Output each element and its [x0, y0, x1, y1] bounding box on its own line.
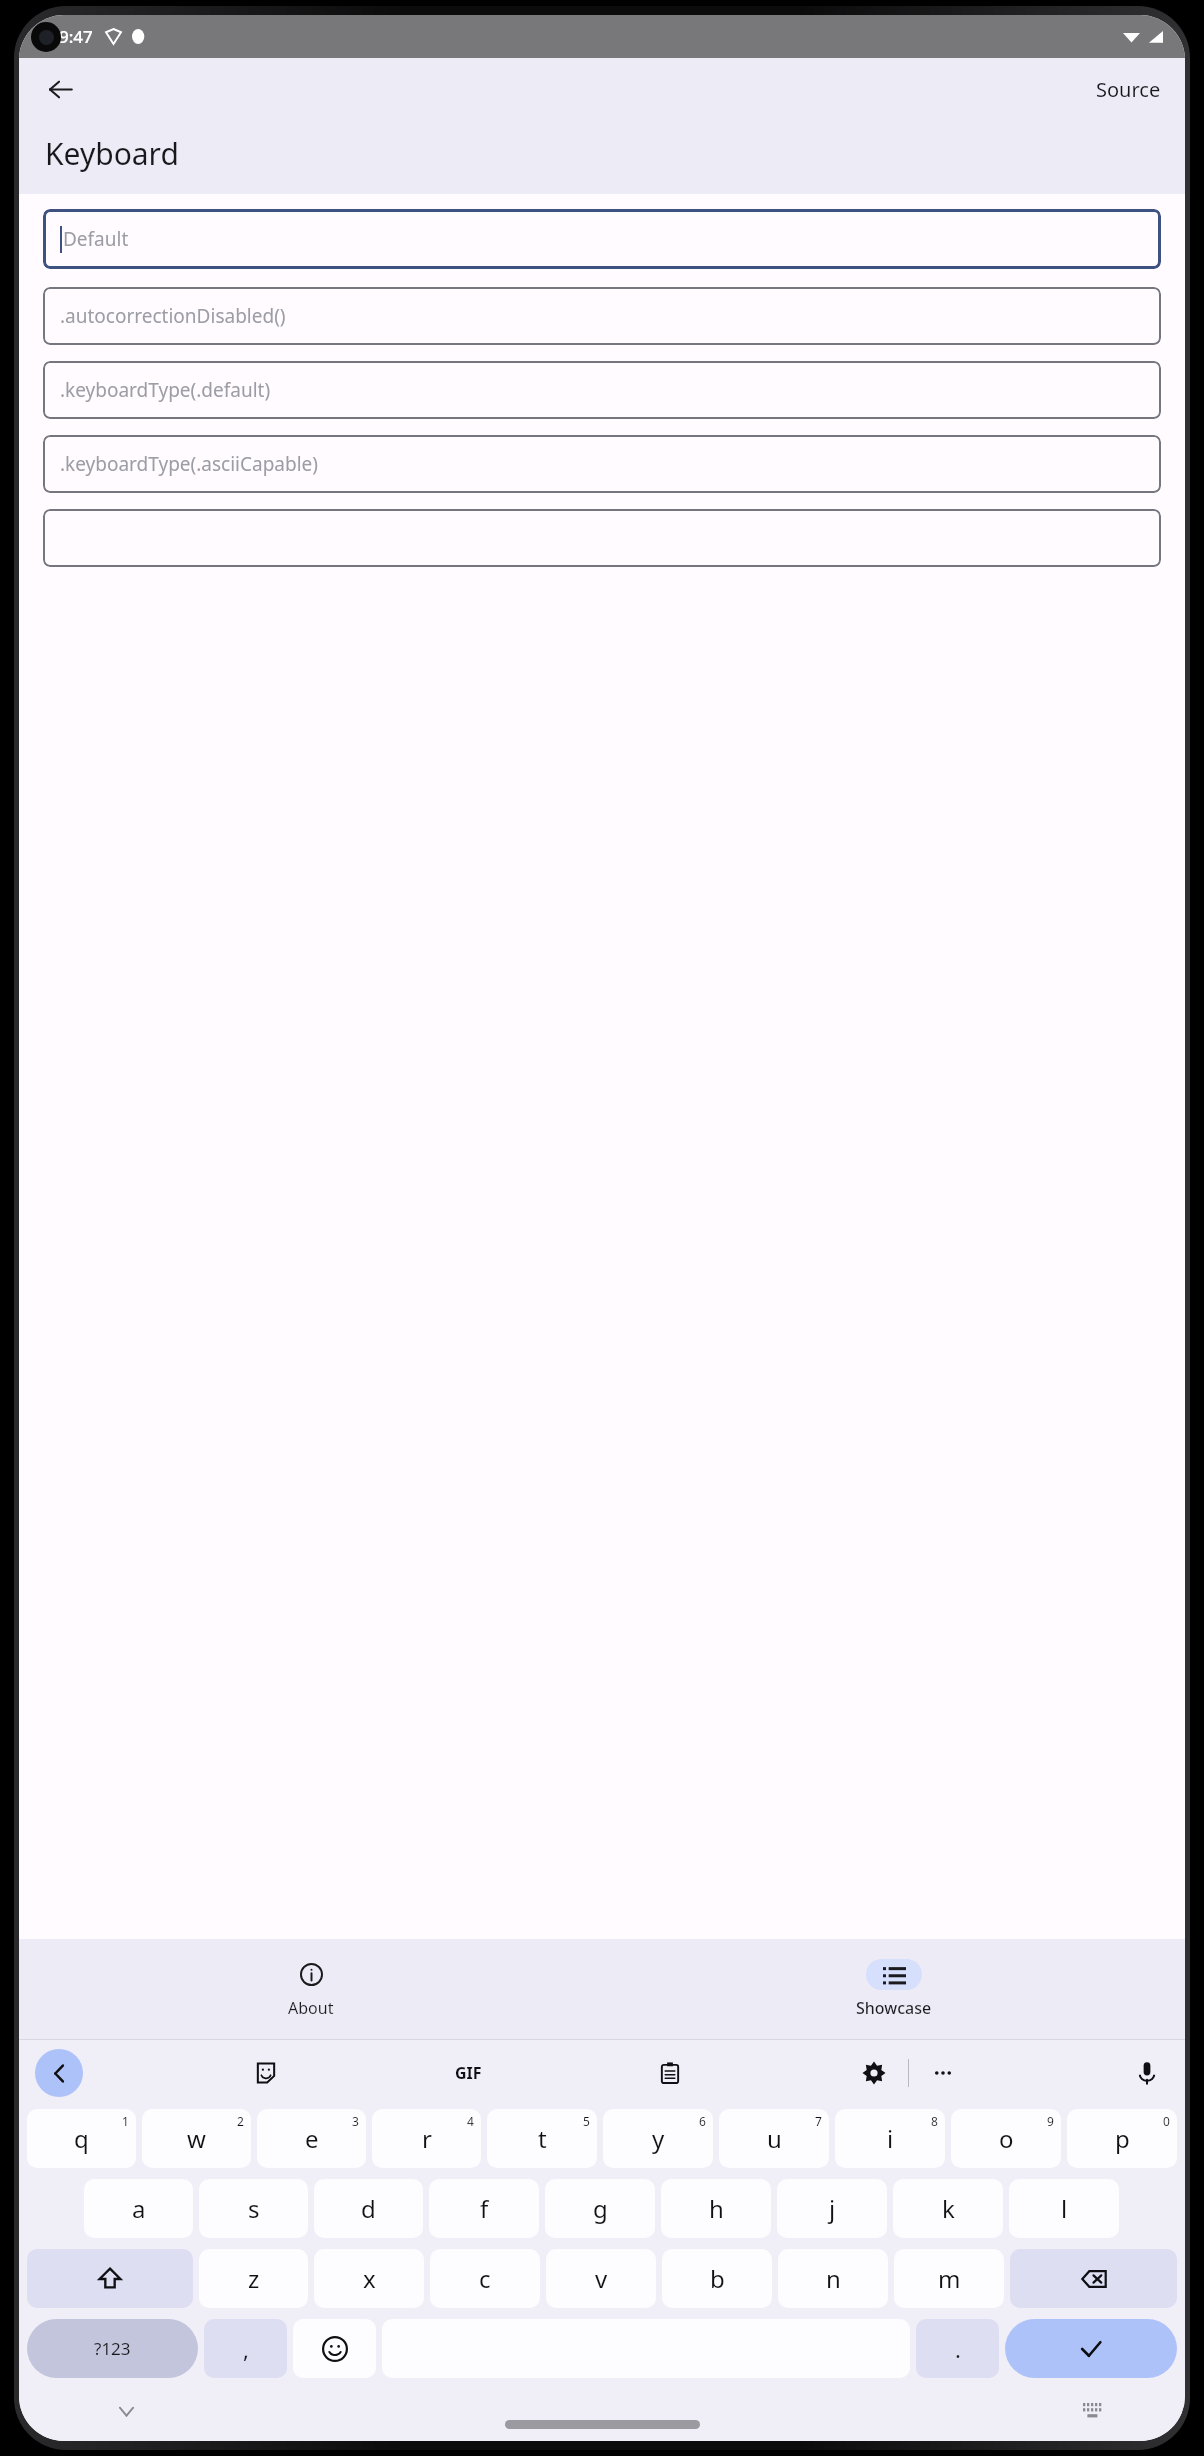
staticText: a — [132, 2192, 146, 2225]
staticText: 0 — [1163, 2113, 1170, 2129]
staticText: 2 — [237, 2113, 244, 2129]
staticText: .autocorrectionDisabled() — [60, 303, 286, 329]
staticText: k — [942, 2192, 955, 2225]
button[interactable]: g — [545, 2179, 655, 2238]
button[interactable]: p — [1067, 2109, 1177, 2168]
button[interactable]: Settings — [852, 2051, 896, 2095]
button[interactable]: Voice input — [1125, 2051, 1169, 2095]
button[interactable]: ?123 — [27, 2319, 198, 2378]
button[interactable]: Source — [1090, 72, 1167, 107]
button[interactable]: . — [916, 2319, 999, 2378]
staticText: p — [1115, 2122, 1130, 2155]
staticText: q — [74, 2122, 89, 2155]
button[interactable]: l — [1009, 2179, 1119, 2238]
staticText: x — [363, 2262, 376, 2295]
staticText: 8 — [931, 2113, 938, 2129]
staticText: . — [955, 2334, 961, 2364]
staticText: Source — [1096, 76, 1161, 103]
button[interactable]: x — [314, 2249, 424, 2308]
staticText: Default — [63, 226, 129, 252]
button[interactable]: Switch keyboard — [1076, 2394, 1110, 2428]
staticText: l — [1061, 2192, 1068, 2225]
staticText: o — [999, 2122, 1014, 2155]
staticText: 6 — [699, 2113, 706, 2129]
button[interactable]: .keyboardType(.default) — [43, 361, 1161, 419]
button[interactable]: i — [835, 2109, 945, 2168]
staticText: f — [480, 2192, 489, 2225]
button[interactable]: .autocorrectionDisabled() — [43, 287, 1161, 345]
staticText: w — [187, 2122, 206, 2155]
staticText: .keyboardType(.default) — [60, 377, 271, 403]
staticText: .keyboardType(.asciiCapable) — [60, 451, 319, 477]
staticText: Showcase — [856, 1997, 932, 2019]
button[interactable] — [43, 509, 1161, 567]
button[interactable]: j — [777, 2179, 887, 2238]
staticText: 5 — [583, 2113, 590, 2129]
button[interactable]: a — [84, 2179, 193, 2238]
staticText: 7 — [815, 2113, 822, 2129]
button[interactable]: Back — [37, 66, 83, 112]
staticText: r — [422, 2122, 432, 2155]
button[interactable]: GIF — [448, 2053, 488, 2093]
button[interactable]: c — [430, 2249, 540, 2308]
staticText: h — [709, 2192, 724, 2225]
staticText: u — [767, 2122, 782, 2155]
staticText: n — [826, 2262, 841, 2295]
button[interactable]: h — [661, 2179, 771, 2238]
staticText: b — [710, 2262, 725, 2295]
button[interactable]: More options — [921, 2051, 965, 2095]
button[interactable]: About — [19, 1939, 602, 2039]
staticText: 4 — [467, 2113, 474, 2129]
staticText: Keyboard — [45, 133, 179, 174]
button[interactable]: Backspace — [1010, 2249, 1177, 2308]
button[interactable]: Showcase — [602, 1939, 1185, 2039]
staticText: y — [652, 2122, 665, 2155]
staticText: g — [593, 2192, 608, 2225]
button[interactable]: , — [204, 2319, 287, 2378]
button[interactable]: Clipboard — [648, 2051, 692, 2095]
button[interactable]: r — [372, 2109, 481, 2168]
button[interactable]: Enter — [1005, 2319, 1177, 2378]
staticText: j — [829, 2192, 836, 2225]
button[interactable]: Shift — [27, 2249, 193, 2308]
button[interactable]: z — [199, 2249, 308, 2308]
staticText: v — [595, 2262, 608, 2295]
button[interactable]: d — [314, 2179, 423, 2238]
staticText: c — [479, 2262, 491, 2295]
button[interactable]: b — [662, 2249, 772, 2308]
staticText: s — [248, 2192, 260, 2225]
staticText: About — [288, 1997, 334, 2019]
button[interactable]: w — [142, 2109, 251, 2168]
staticText: d — [361, 2192, 376, 2225]
staticText: GIF — [455, 2062, 482, 2084]
staticText: 9:47 — [59, 25, 93, 48]
staticText: z — [248, 2262, 260, 2295]
button[interactable]: .keyboardType(.asciiCapable) — [43, 435, 1161, 493]
button[interactable]: t — [487, 2109, 597, 2168]
button[interactable]: Stickers — [244, 2051, 288, 2095]
button[interactable]: y — [603, 2109, 713, 2168]
button[interactable]: Default — [43, 209, 1161, 269]
button[interactable]: u — [719, 2109, 829, 2168]
staticText: 1 — [122, 2113, 129, 2129]
staticText: e — [305, 2122, 319, 2155]
button[interactable]: s — [199, 2179, 308, 2238]
button[interactable]: Expand toolbar — [35, 2049, 83, 2097]
staticText: 9 — [1047, 2113, 1054, 2129]
staticText: , — [243, 2334, 249, 2364]
button[interactable]: v — [546, 2249, 656, 2308]
button[interactable]: m — [894, 2249, 1004, 2308]
button[interactable]: f — [429, 2179, 539, 2238]
staticText: m — [938, 2262, 961, 2295]
button[interactable]: Hide keyboard — [109, 2394, 143, 2428]
button[interactable]: n — [778, 2249, 888, 2308]
button[interactable]: o — [951, 2109, 1061, 2168]
button[interactable]: e — [257, 2109, 366, 2168]
button[interactable]: Emoji — [293, 2319, 376, 2378]
staticText: ?123 — [94, 2337, 131, 2360]
button[interactable]: q — [27, 2109, 136, 2168]
staticText: 3 — [352, 2113, 359, 2129]
staticText: t — [538, 2122, 547, 2155]
button[interactable]: k — [893, 2179, 1003, 2238]
